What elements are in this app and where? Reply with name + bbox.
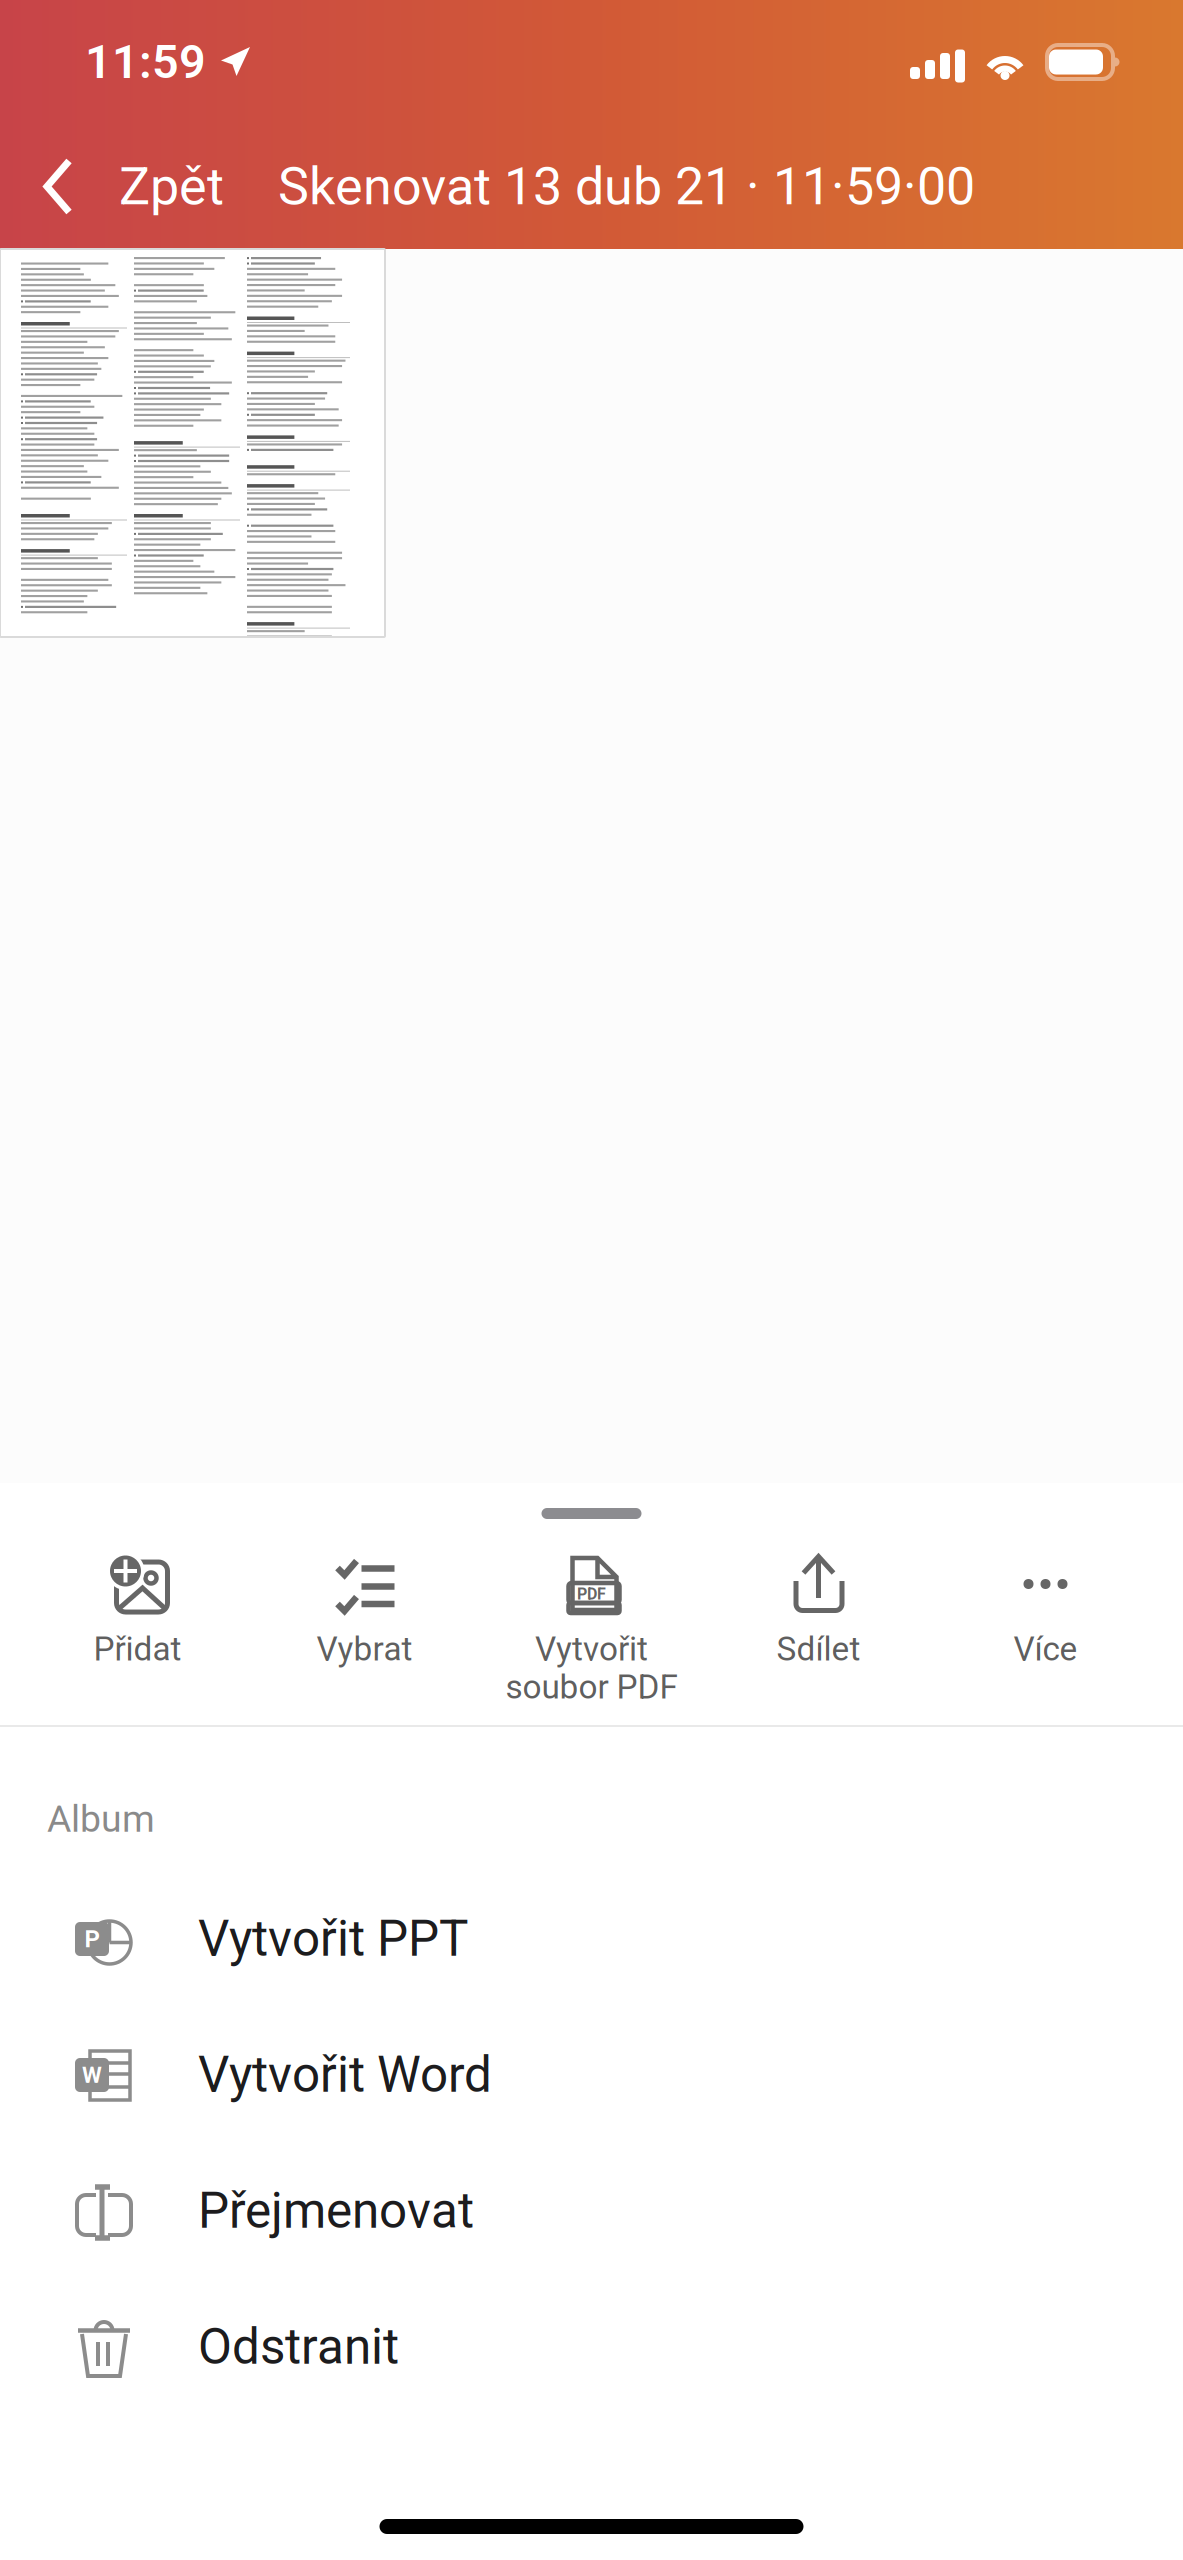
staticText: Vybrat: [316, 1630, 412, 1668]
staticText: Zpět: [119, 157, 224, 216]
staticText: Odstranit: [198, 2319, 399, 2375]
staticText: 11:59: [85, 35, 206, 89]
staticText: Sdílet: [776, 1630, 860, 1668]
button[interactable]: Vybrat: [251, 1548, 478, 1708]
button[interactable]: Přejmenovat: [0, 2143, 1183, 2279]
staticText: Skenovat 13 dub 21 · 11·59·00: [278, 157, 975, 216]
button[interactable]: W: [0, 2007, 1183, 2143]
button[interactable]: Vytvořit soubor PDF: [478, 1548, 705, 1708]
button[interactable]: Odstranit: [0, 2279, 1183, 2415]
button[interactable]: Přidat: [24, 1548, 251, 1708]
staticText: Vytvořit Word: [198, 2047, 492, 2103]
staticText: PDF: [577, 1585, 606, 1603]
staticText: Více: [1013, 1630, 1077, 1668]
button[interactable]: P: [0, 1871, 1183, 2007]
staticText: Vytvořit: [535, 1630, 648, 1668]
staticText: Album: [47, 1798, 155, 1840]
staticText: Vytvořit PPT: [198, 1911, 468, 1967]
button[interactable]: Zpět: [0, 130, 246, 242]
button[interactable]: Více: [932, 1548, 1159, 1708]
staticText: P: [84, 1925, 99, 1953]
staticText: Přejmenovat: [198, 2183, 474, 2239]
staticText: soubor PDF: [505, 1668, 677, 1706]
button[interactable]: Sdílet: [705, 1548, 932, 1708]
staticText: W: [82, 2062, 102, 2088]
staticText: Přidat: [93, 1630, 181, 1668]
